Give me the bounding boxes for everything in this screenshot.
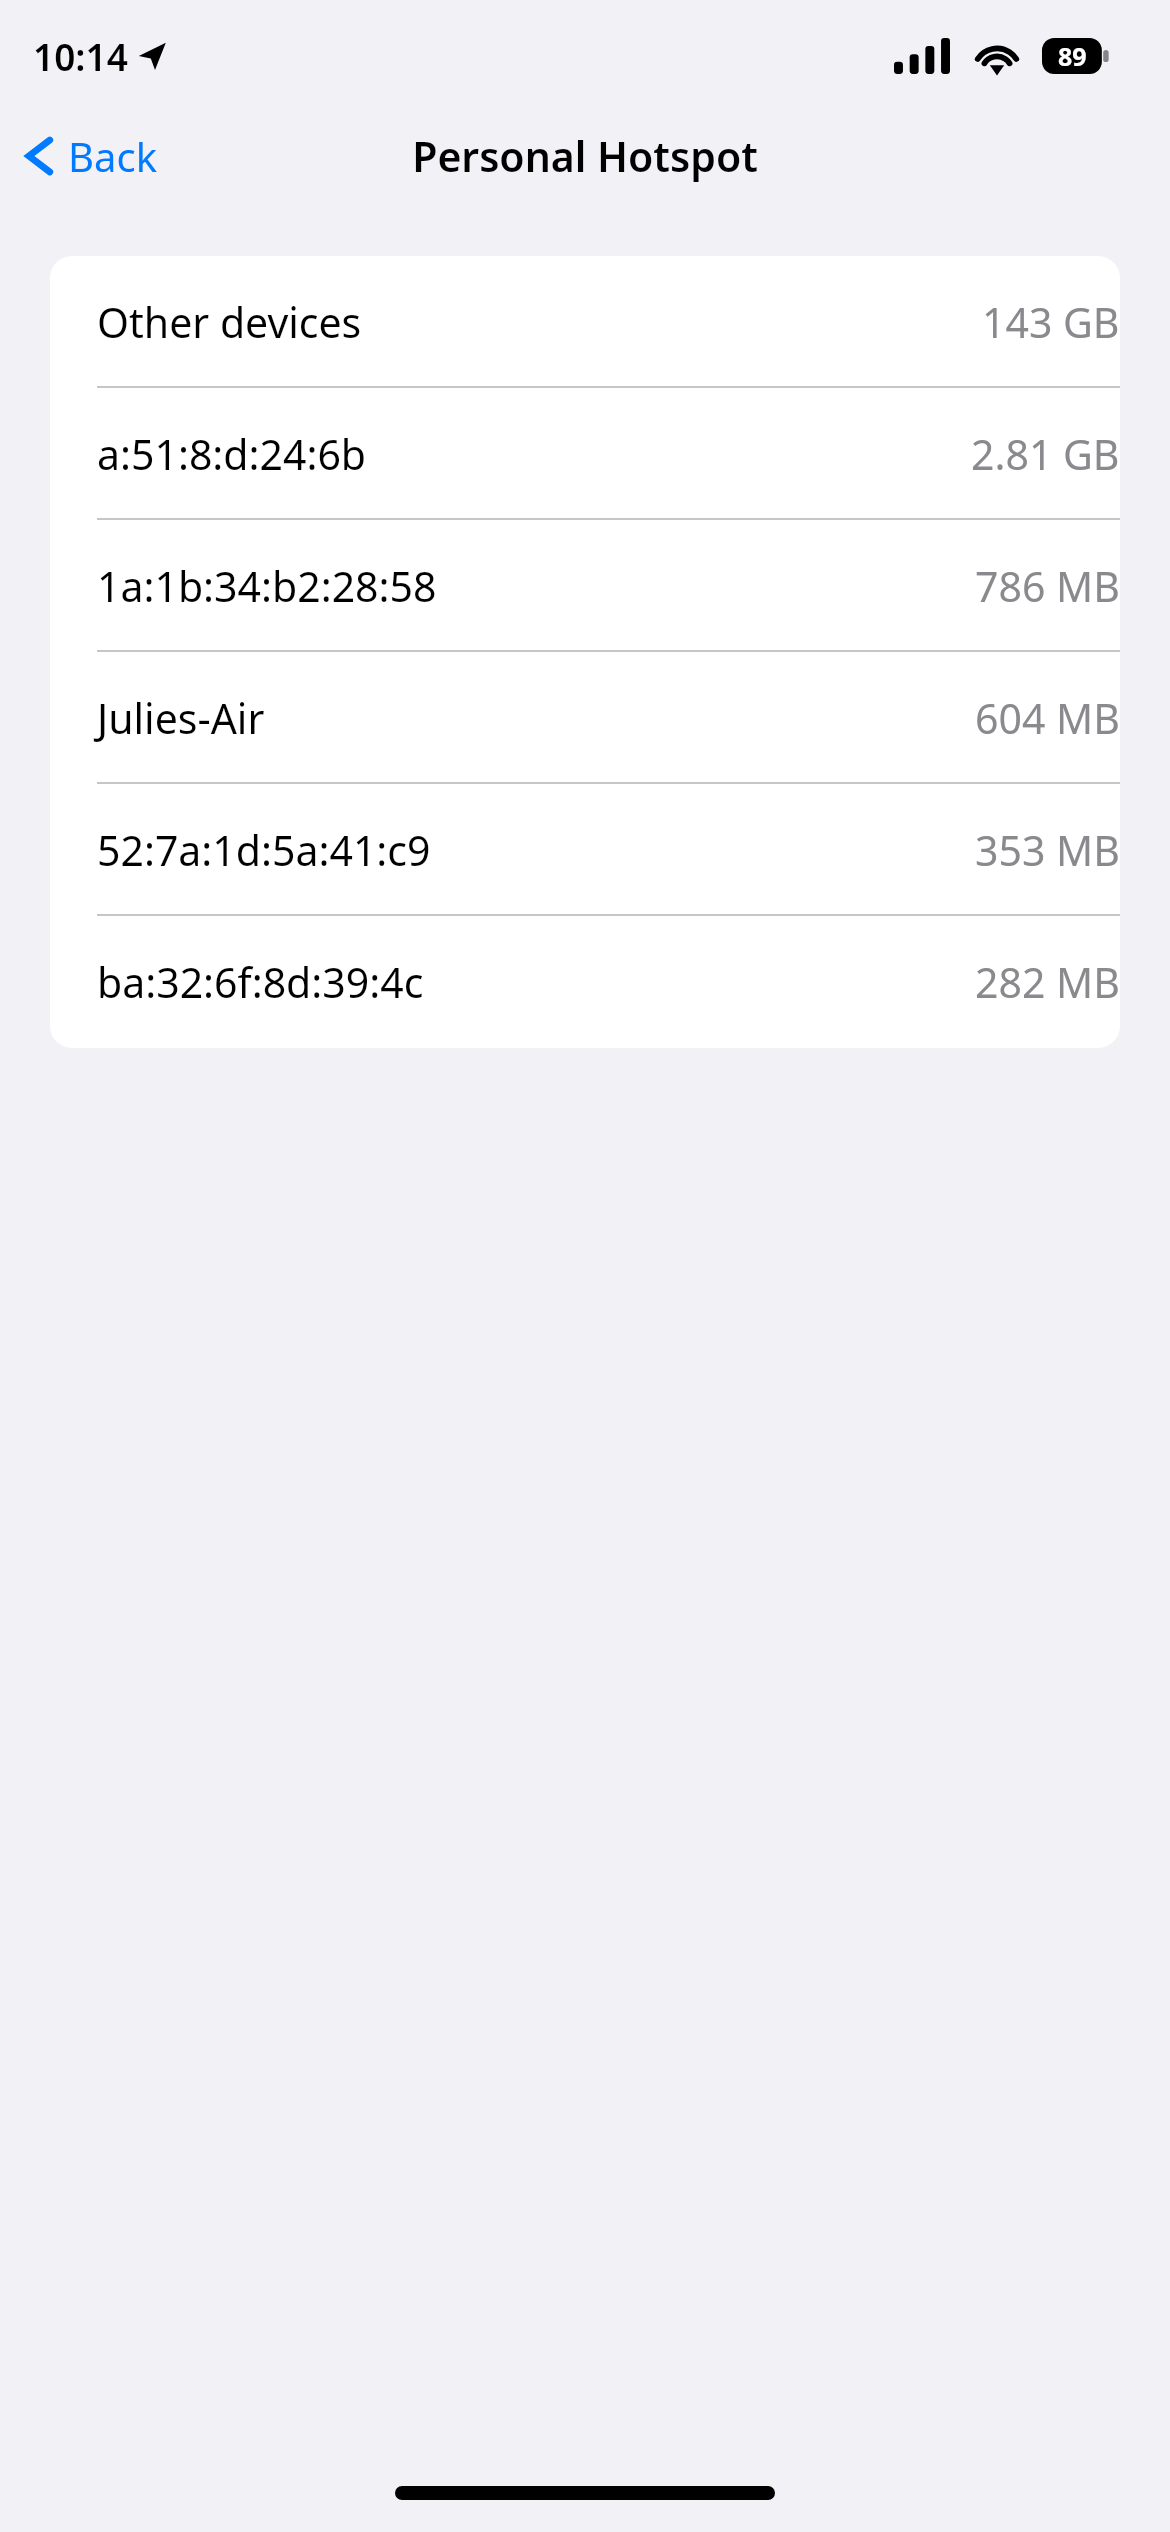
staticText: Personal Hotspot — [412, 128, 758, 184]
staticText: 353 MB — [975, 822, 1120, 878]
staticText: 2.81 GB — [971, 426, 1120, 482]
button[interactable]: 1a:1b:34:b2:28:58 — [50, 520, 1120, 652]
staticText: 786 MB — [975, 558, 1120, 614]
button[interactable]: Julies-Air — [50, 652, 1120, 784]
staticText: 89 — [1058, 39, 1087, 73]
staticText: 604 MB — [975, 690, 1120, 746]
button[interactable]: Other devices — [50, 256, 1120, 388]
button[interactable]: Back — [0, 119, 177, 193]
staticText: ba:32:6f:8d:39:4c — [97, 954, 424, 1010]
staticText: 1a:1b:34:b2:28:58 — [97, 558, 437, 614]
button[interactable]: a:51:8:d:24:6b — [50, 388, 1120, 520]
staticText: 52:7a:1d:5a:41:c9 — [97, 822, 431, 878]
staticText: 10:14 — [33, 31, 128, 81]
staticText: 282 MB — [975, 954, 1120, 1010]
staticText: Other devices — [97, 294, 362, 350]
staticText: a:51:8:d:24:6b — [97, 426, 367, 482]
staticText: Julies-Air — [97, 690, 265, 746]
button[interactable]: ba:32:6f:8d:39:4c — [50, 916, 1120, 1048]
staticText: Back — [68, 129, 157, 183]
button[interactable]: 52:7a:1d:5a:41:c9 — [50, 784, 1120, 916]
staticText: 143 GB — [982, 294, 1120, 350]
